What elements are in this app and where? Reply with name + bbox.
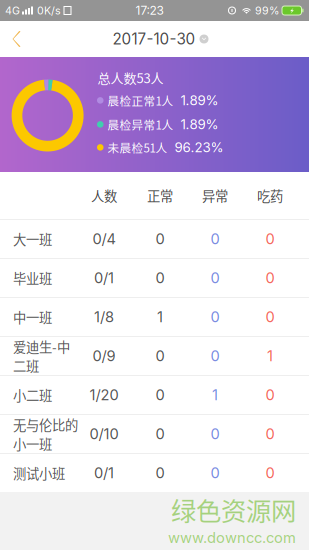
staticText: 0 [210,464,219,482]
staticText: 中一班 [13,307,52,327]
staticText: 0 [210,230,219,248]
staticText: 吃药 [257,186,283,205]
staticText: 0 [155,347,164,365]
staticText: 1 [157,308,163,326]
staticText: 4G [5,4,20,17]
staticText: 0K/s [37,4,61,17]
staticText: 异常 [202,186,228,205]
staticText: 无与伦比的 小一班 [13,415,78,453]
staticText: 总人数53人 [97,68,163,87]
staticText: 0 [210,347,219,365]
staticText: 0/9 [92,347,115,365]
staticText: 晨检异常1人 [107,116,173,133]
staticText: 2017-10-30 [112,30,195,48]
staticText: 0 [265,230,274,248]
staticText: 正常 [147,186,173,205]
staticText: 0 [155,386,164,404]
staticText: 0 [210,308,219,326]
staticText: 晨检正常1人 [107,92,173,109]
staticText: 0 [155,230,164,248]
staticText: 小二班 [13,385,52,405]
staticText: 0 [265,464,274,482]
staticText: 1/8 [94,308,114,326]
staticText: 0 [155,269,164,287]
staticText: 1/20 [89,386,118,404]
staticText: 0/10 [89,425,118,443]
staticText: 17:23 [135,3,163,18]
staticText: 0/4 [92,230,115,248]
staticText: 0 [265,308,274,326]
staticText: 0/1 [94,269,114,287]
staticText: 测试小班 [13,463,65,483]
staticText: 1.89% [180,92,218,108]
staticText: 爱迪生-中 二班 [13,337,70,375]
staticText: 0 [155,464,164,482]
staticText: 绿色资源网 [171,491,296,528]
staticText: 未晨检51人 [107,139,167,156]
staticText: 0 [155,425,164,443]
staticText: 人数 [91,186,117,205]
button[interactable]: 2017-10-30 [100,24,208,54]
staticText: 大一班 [13,229,52,249]
staticText: www.downcc.com [168,529,296,546]
staticText: 1 [267,347,273,365]
staticText: 1 [212,386,218,404]
staticText: 1.89% [180,116,218,132]
button[interactable]: Back [0,21,34,57]
staticText: 0/1 [94,464,114,482]
staticText: 毕业班 [13,268,52,288]
staticText: 99% [255,4,279,17]
staticText: 96.23% [174,139,223,155]
staticText: 0 [210,425,219,443]
staticText: 0 [265,269,274,287]
staticText: 0 [210,269,219,287]
staticText: 0 [265,425,274,443]
staticText: 0 [265,386,274,404]
